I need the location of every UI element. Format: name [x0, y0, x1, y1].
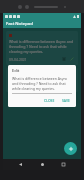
staticText: Fast Notepad: [6, 21, 33, 27]
staticText: Edit: [12, 68, 20, 73]
button[interactable]: What is difference between Async and thr…: [6, 31, 78, 65]
staticText: 09-04-2021: [9, 57, 27, 62]
staticText: SAVE: [62, 98, 70, 103]
button[interactable]: Add note: [64, 142, 77, 155]
staticText: What is difference between Async and thr…: [12, 76, 72, 91]
button[interactable]: Delete note: [61, 56, 67, 62]
button[interactable]: Recent apps: [59, 160, 68, 169]
button[interactable]: Prepare for interview on 12th March: [6, 68, 78, 92]
button[interactable]: Home: [38, 160, 47, 169]
staticText: Prepare for interview on 12th March: [9, 76, 70, 81]
button[interactable]: CLOSE: [42, 97, 57, 104]
button[interactable]: Edit note: [69, 56, 75, 62]
button[interactable]: SAVE: [60, 97, 72, 104]
button[interactable]: Back: [16, 160, 25, 169]
staticText: 09-04-2021: [9, 84, 27, 89]
staticText: CLOSE: [44, 98, 55, 103]
button[interactable]: Fast Notepad: [3, 19, 81, 28]
button[interactable]: Delete note: [61, 83, 67, 89]
staticText: What is difference between Async and thr…: [9, 39, 75, 54]
